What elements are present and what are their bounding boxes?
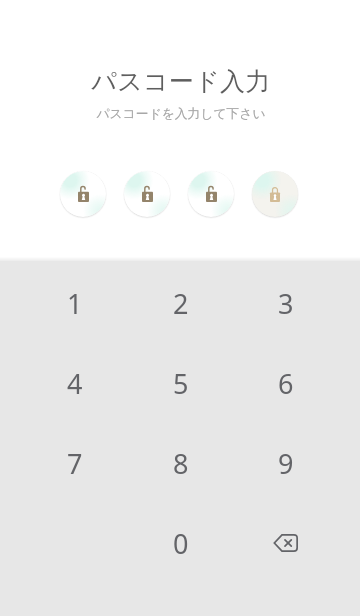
staticText: 9 [278, 445, 294, 482]
button[interactable]: 5 [128, 343, 233, 423]
button[interactable]: Backspace [233, 503, 338, 583]
staticText: 2 [173, 285, 189, 322]
staticText: 6 [278, 365, 294, 402]
staticText: パスコード入力 [1, 66, 360, 97]
staticText: 8 [173, 445, 189, 482]
staticText: 7 [67, 445, 83, 482]
button[interactable]: 9 [233, 423, 338, 503]
staticText: 1 [67, 285, 83, 322]
button[interactable]: Empty digit [60, 171, 106, 217]
button[interactable]: 6 [233, 343, 338, 423]
button[interactable]: Empty digit [124, 171, 170, 217]
staticText: パスコードを入力して下さい [1, 106, 360, 122]
staticText: 0 [173, 525, 189, 562]
button[interactable]: 1 [22, 263, 128, 343]
button[interactable]: 0 [128, 503, 233, 583]
button[interactable]: 2 [128, 263, 233, 343]
button[interactable]: Empty digit [188, 171, 234, 217]
button[interactable]: 4 [22, 343, 128, 423]
button[interactable]: 3 [233, 263, 338, 343]
staticText: 3 [278, 285, 294, 322]
button[interactable]: Entered digit [252, 171, 298, 217]
button[interactable]: 7 [22, 423, 128, 503]
staticText: 4 [67, 365, 83, 402]
staticText: 5 [173, 365, 189, 402]
button[interactable]: 8 [128, 423, 233, 503]
